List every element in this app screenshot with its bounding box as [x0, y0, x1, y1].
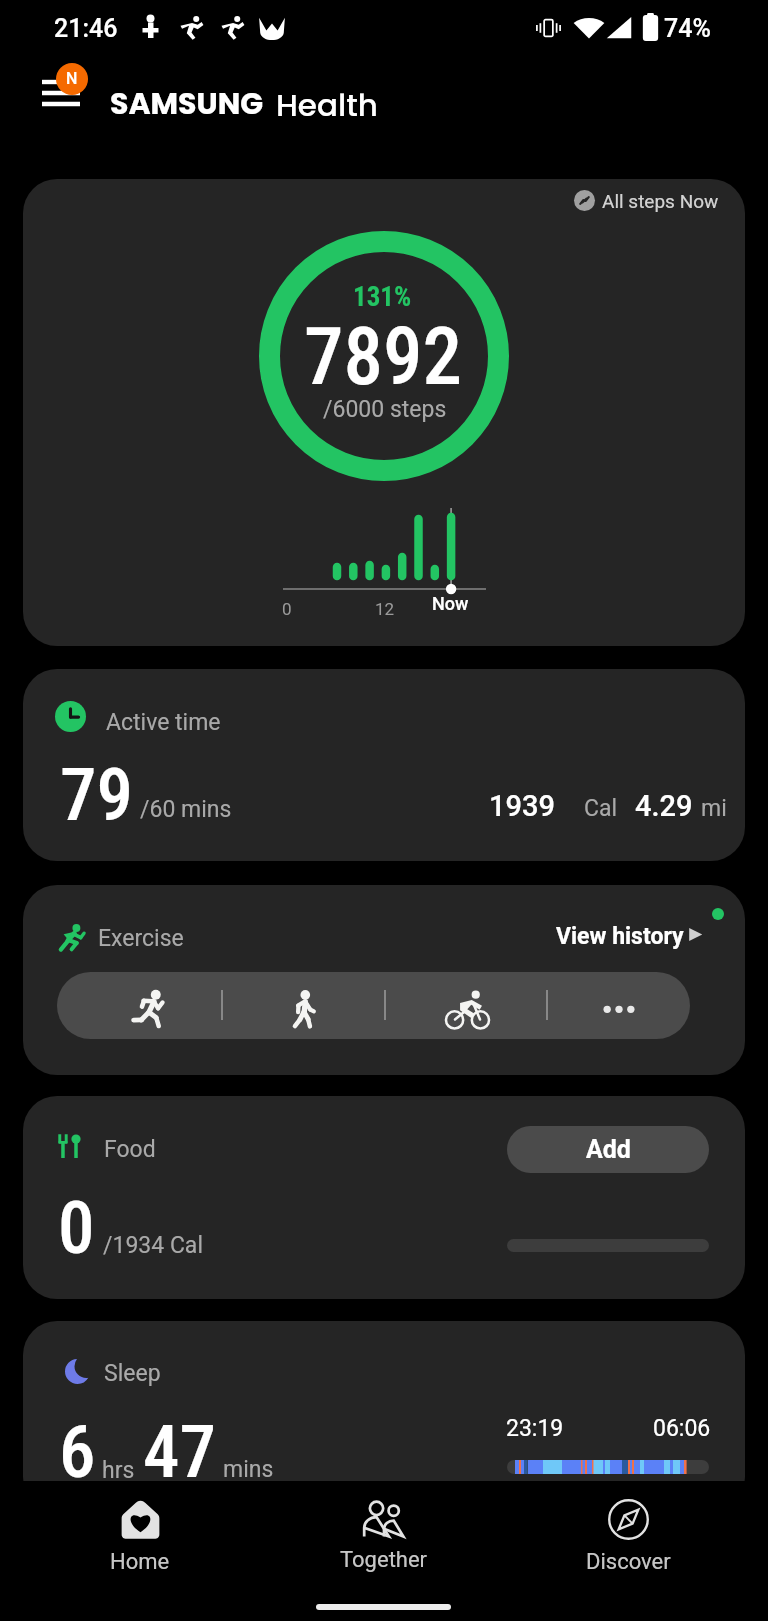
button[interactable]: Food	[23, 1096, 745, 1299]
staticText: /60 mins	[140, 796, 232, 823]
staticText: 74%	[664, 14, 711, 43]
staticText: hrs	[102, 1457, 135, 1484]
staticText: Together	[340, 1547, 428, 1573]
button[interactable]	[568, 187, 738, 222]
button[interactable]: Discover	[506, 1481, 750, 1586]
staticText: N	[66, 69, 78, 88]
staticText: 12	[375, 599, 395, 619]
staticText: Home	[110, 1549, 170, 1575]
staticText: 131%	[353, 281, 412, 313]
button[interactable]: Home	[18, 1481, 262, 1586]
staticText: 47	[143, 1409, 216, 1495]
staticText: Cal	[584, 795, 618, 822]
staticText: All steps Now	[602, 190, 719, 212]
staticText: /1934 Cal	[103, 1232, 203, 1259]
staticText: 1939	[489, 789, 555, 823]
staticText: Add	[586, 1135, 631, 1164]
button[interactable]: Menu	[34, 64, 92, 122]
staticText: Exercise	[98, 925, 184, 952]
staticText: 79	[60, 752, 133, 838]
button[interactable]: Active time	[23, 669, 745, 861]
staticText: 7892	[304, 311, 462, 404]
staticText: 0	[282, 599, 292, 619]
button[interactable]: Exercise	[23, 885, 745, 1075]
button[interactable]: Walking	[222, 972, 384, 1039]
staticText: 4.29	[635, 789, 693, 823]
staticText: SAMSUNG	[110, 83, 264, 125]
staticText: Now	[432, 593, 469, 614]
staticText: 0	[58, 1185, 95, 1271]
staticText: 21:46	[54, 14, 118, 43]
button[interactable]: Sleep	[23, 1321, 745, 1511]
staticText: Sleep	[104, 1360, 161, 1387]
staticText: Health	[276, 83, 378, 126]
staticText: Active time	[106, 709, 221, 736]
staticText: Food	[104, 1136, 156, 1163]
button[interactable]: Running	[57, 972, 222, 1039]
button[interactable]: Together	[262, 1481, 506, 1586]
button[interactable]: All steps Now	[23, 179, 745, 646]
staticText: /6000 steps	[323, 396, 447, 423]
button[interactable]: More options	[546, 972, 690, 1039]
staticText: 06:06	[653, 1415, 711, 1442]
button[interactable]	[548, 913, 728, 955]
staticText: Discover	[586, 1549, 671, 1575]
staticText: View history	[556, 923, 684, 950]
staticText: mins	[223, 1456, 274, 1483]
staticText: mi	[701, 795, 727, 822]
button[interactable]: Cycling	[384, 972, 546, 1039]
button[interactable]: Add	[507, 1126, 709, 1173]
staticText: 23:19	[506, 1415, 564, 1442]
staticText: 6	[59, 1409, 96, 1495]
